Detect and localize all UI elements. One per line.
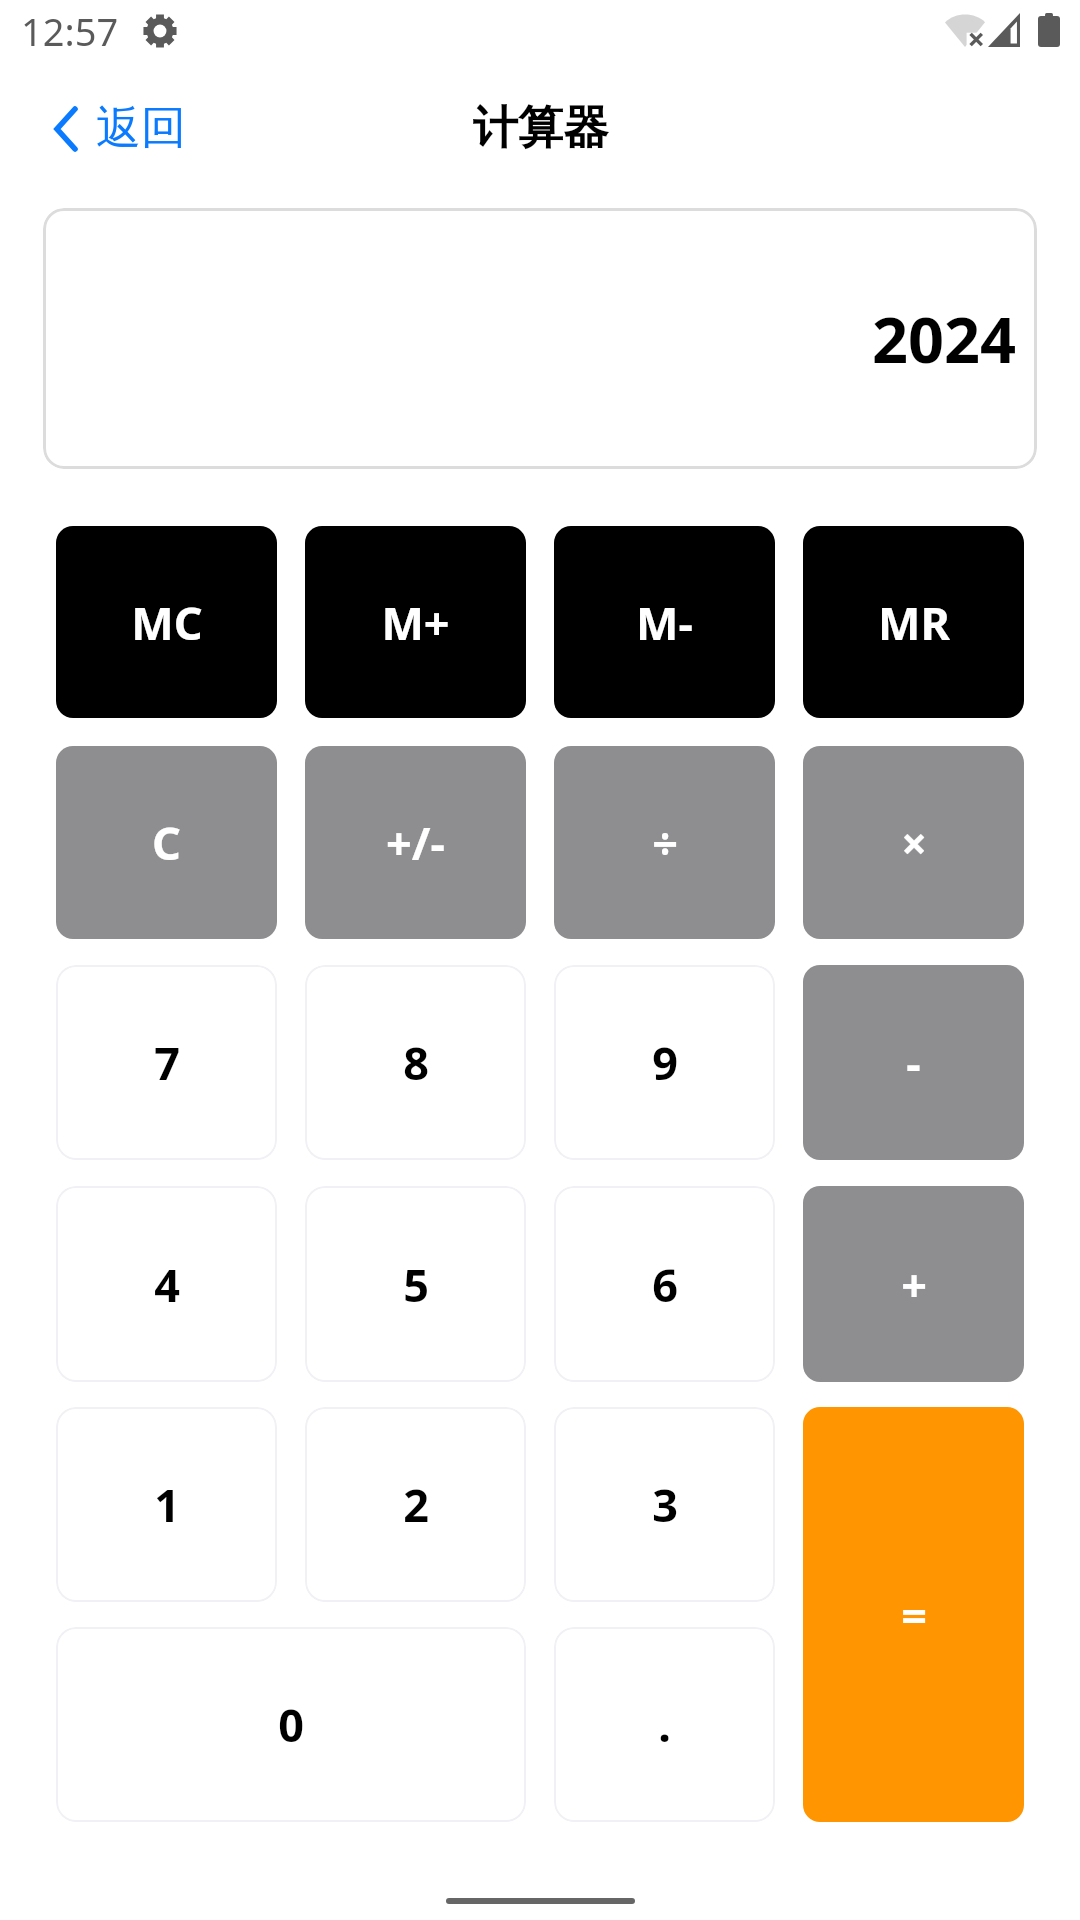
staticText: 5: [403, 1254, 429, 1315]
staticText: MR: [878, 592, 950, 653]
staticText: C: [152, 812, 181, 873]
button[interactable]: MR: [803, 526, 1024, 718]
staticText: 2: [403, 1474, 429, 1535]
button[interactable]: 8: [305, 965, 526, 1160]
button[interactable]: 1: [56, 1407, 277, 1602]
button[interactable]: Decimal point: [554, 1627, 775, 1822]
button[interactable]: Minus: [803, 965, 1024, 1160]
button[interactable]: 3: [554, 1407, 775, 1602]
button[interactable]: 6: [554, 1186, 775, 1382]
staticText: 12:57: [21, 5, 119, 57]
button[interactable]: M-: [554, 526, 775, 718]
staticText: 8: [403, 1032, 429, 1093]
staticText: 2024: [872, 296, 1017, 382]
staticText: +/-: [386, 812, 445, 873]
staticText: M+: [381, 592, 450, 653]
staticText: ÷: [652, 812, 678, 873]
staticText: M-: [636, 592, 693, 653]
button[interactable]: 7: [56, 965, 277, 1160]
button[interactable]: Equals: [803, 1407, 1024, 1822]
staticText: MC: [131, 592, 203, 653]
staticText: 3: [652, 1474, 678, 1535]
staticText: 6: [652, 1254, 678, 1315]
button[interactable]: MC: [56, 526, 277, 718]
staticText: +: [901, 1254, 927, 1315]
staticText: 计算器: [473, 100, 608, 157]
button[interactable]: M+: [305, 526, 526, 718]
staticText: 返回: [96, 100, 186, 157]
staticText: 0: [278, 1694, 304, 1755]
button[interactable]: Clear: [56, 746, 277, 939]
button[interactable]: 2: [305, 1407, 526, 1602]
staticText: 7: [154, 1032, 180, 1093]
button[interactable]: 4: [56, 1186, 277, 1382]
button[interactable]: 5: [305, 1186, 526, 1382]
staticText: -: [906, 1032, 921, 1093]
button[interactable]: Plus minus: [305, 746, 526, 939]
staticText: =: [901, 1584, 927, 1645]
button[interactable]: 0: [56, 1627, 526, 1822]
staticText: 9: [652, 1032, 678, 1093]
staticText: .: [658, 1694, 671, 1755]
button[interactable]: 返回: [54, 100, 186, 157]
button[interactable]: Divide: [554, 746, 775, 939]
staticText: 4: [154, 1254, 180, 1315]
button[interactable]: Plus: [803, 1186, 1024, 1382]
staticText: 1: [154, 1474, 180, 1535]
button[interactable]: 9: [554, 965, 775, 1160]
button[interactable]: Multiply: [803, 746, 1024, 939]
staticText: ×: [901, 812, 927, 873]
